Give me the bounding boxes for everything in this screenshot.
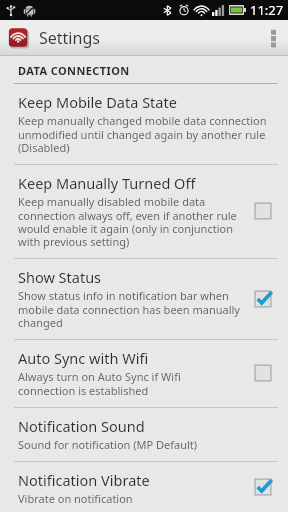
button[interactable]: Unchecked xyxy=(250,360,276,386)
button[interactable]: Auto Sync with Wifi xyxy=(0,340,288,407)
button[interactable]: Settings xyxy=(0,23,106,53)
staticText: Auto Sync with Wifi xyxy=(18,348,149,368)
button[interactable]: Show Status xyxy=(0,259,288,339)
button[interactable]: Checked xyxy=(250,474,276,500)
staticText: 11:27 xyxy=(250,1,284,19)
staticText: Settings xyxy=(39,27,100,49)
button[interactable]: Keep Manually Turned Off xyxy=(0,165,288,258)
staticText: Sound for notification (MP Default) xyxy=(18,437,198,452)
button[interactable]: Keep Mobile Data State xyxy=(0,84,288,164)
staticText: Notification Sound xyxy=(18,416,145,436)
button[interactable]: Unchecked xyxy=(250,198,276,224)
button[interactable]: Notification Vibrate xyxy=(0,462,288,512)
staticText: Keep Mobile Data State xyxy=(18,92,177,112)
button[interactable]: More options xyxy=(258,20,288,56)
staticText: Vibrate on notification xyxy=(18,491,133,503)
button[interactable]: Notification Sound xyxy=(0,408,288,461)
staticText: Show Status xyxy=(18,267,102,287)
staticText: Keep manually disabled mobile data conne… xyxy=(18,194,240,249)
staticText: Show status info in notification bar whe… xyxy=(18,288,240,330)
staticText: Keep manually changed mobile data connec… xyxy=(18,113,276,155)
staticText: Always turn on Auto Sync if Wifi connect… xyxy=(18,369,240,398)
staticText: DATA CONNECTION xyxy=(18,63,130,78)
staticText: Notification Vibrate xyxy=(18,470,150,490)
button[interactable]: Checked xyxy=(250,286,276,312)
staticText: Keep Manually Turned Off xyxy=(18,173,196,193)
